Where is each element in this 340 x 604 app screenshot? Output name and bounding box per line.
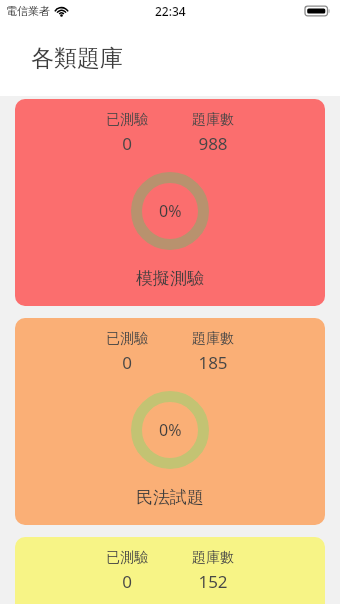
- staticText: 185: [198, 351, 228, 374]
- staticText: 題庫數: [192, 549, 234, 567]
- staticText: 題庫數: [192, 330, 234, 348]
- button[interactable]: 已測驗: [15, 99, 325, 306]
- staticText: 各類題庫: [31, 44, 123, 73]
- staticText: 電信業者: [6, 4, 50, 18]
- staticText: 0%: [159, 200, 182, 222]
- button[interactable]: 已測驗: [15, 537, 325, 604]
- staticText: 已測驗: [106, 330, 148, 348]
- staticText: 民法試題: [136, 487, 204, 508]
- staticText: 已測驗: [106, 111, 148, 129]
- staticText: 152: [198, 570, 228, 593]
- staticText: 已測驗: [106, 549, 148, 567]
- staticText: 模擬測驗: [136, 268, 204, 289]
- button[interactable]: 已測驗: [15, 318, 325, 525]
- staticText: 題庫數: [192, 111, 234, 129]
- staticText: 0%: [159, 419, 182, 441]
- staticText: 0: [122, 132, 132, 155]
- staticText: 988: [198, 132, 228, 155]
- staticText: 0: [122, 570, 132, 593]
- staticText: 22:34: [155, 3, 186, 19]
- staticText: 0: [122, 351, 132, 374]
